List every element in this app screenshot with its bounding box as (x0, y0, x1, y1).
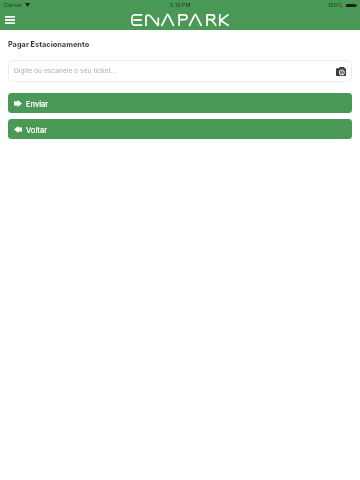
button[interactable]: Voltar (8, 119, 352, 139)
staticText: Voltar (26, 126, 48, 135)
staticText: 100% (328, 2, 343, 9)
staticText: 5:19 PM (170, 2, 191, 9)
staticText: Enviar (26, 100, 49, 109)
button[interactable]: Open navigation menu (0, 10, 19, 29)
staticText: Digite ou escaneie o seu ticket... (14, 67, 117, 75)
button[interactable]: ENAPARK (131, 14, 229, 26)
staticText: Pagar Estacionamento (8, 40, 90, 49)
button[interactable]: Scan ticket with camera (333, 63, 349, 79)
button[interactable]: Digite ou escaneie o seu ticket... (8, 60, 352, 82)
staticText: Carrier (4, 2, 22, 9)
button[interactable]: Enviar (8, 93, 352, 113)
